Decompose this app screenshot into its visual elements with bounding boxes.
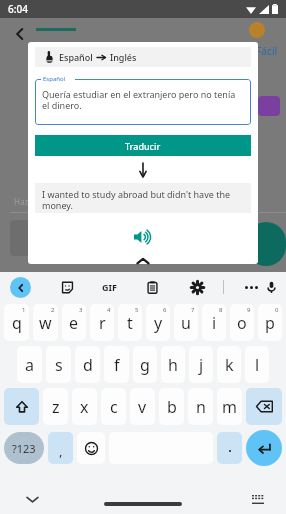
staticText: Español: [59, 51, 93, 63]
button[interactable]: s: [46, 346, 71, 383]
button[interactable]: h: [161, 346, 185, 383]
button[interactable]: GIF: [102, 277, 117, 297]
staticText: w: [39, 312, 52, 334]
button[interactable]: n: [188, 388, 213, 425]
button[interactable]: a: [17, 346, 42, 383]
button[interactable]: Traducir: [35, 135, 251, 156]
staticText: a: [25, 354, 34, 376]
staticText: i: [212, 312, 217, 334]
button[interactable]: c: [101, 388, 126, 425]
staticText: d: [83, 354, 93, 376]
button[interactable]: d: [75, 346, 100, 383]
button[interactable]: j: [189, 346, 213, 383]
button[interactable]: Switch keyboard: [248, 489, 268, 509]
staticText: 7: [191, 306, 195, 314]
button[interactable]: q: [4, 304, 29, 341]
staticText: v: [138, 396, 147, 418]
staticText: 6:04: [8, 2, 28, 16]
staticText: Fácil: [256, 44, 278, 58]
button[interactable]: Clipboard: [142, 277, 162, 297]
staticText: h: [168, 354, 178, 376]
staticText: q: [12, 312, 22, 334]
button[interactable]: Back: [10, 277, 31, 298]
button[interactable]: ?123: [4, 432, 44, 464]
staticText: f: [114, 354, 120, 376]
button[interactable]: Voice input: [261, 277, 281, 297]
button[interactable]: e: [62, 304, 86, 341]
button[interactable]: r: [90, 304, 114, 341]
staticText: n: [196, 396, 206, 418]
button[interactable]: Back: [8, 22, 32, 46]
staticText: 1: [22, 306, 26, 314]
button[interactable]: I wanted to study abroad but didn't have…: [35, 183, 251, 213]
button[interactable]: Shift: [4, 388, 39, 425]
staticText: ?123: [12, 441, 36, 456]
staticText: 3: [79, 306, 83, 314]
button[interactable]: x: [72, 388, 97, 425]
button[interactable]: Stickers: [57, 277, 77, 297]
button[interactable]: g: [133, 346, 157, 383]
button[interactable]: k: [217, 346, 241, 383]
button[interactable]: Enter: [246, 430, 282, 466]
staticText: j: [199, 354, 204, 376]
button[interactable]: t: [118, 304, 142, 341]
button[interactable]: Play audio: [128, 222, 158, 252]
staticText: l: [255, 354, 260, 376]
staticText: k: [225, 354, 234, 376]
button[interactable]: b: [159, 388, 184, 425]
staticText: 8: [219, 306, 223, 314]
staticText: 6: [163, 306, 167, 314]
staticText: x: [80, 396, 89, 418]
staticText: m: [222, 396, 237, 418]
button[interactable]: Quería estudiar en el extranjero pero no…: [35, 79, 251, 125]
button[interactable]: z: [43, 388, 68, 425]
staticText: t: [127, 312, 133, 334]
staticText: GIF: [102, 281, 117, 293]
button[interactable]: l: [245, 346, 269, 383]
staticText: b: [167, 396, 177, 418]
staticText: 9: [247, 306, 251, 314]
staticText: y: [154, 312, 163, 334]
staticText: 5: [135, 306, 139, 314]
staticText: I wanted to study abroad but didn't have…: [42, 188, 245, 212]
staticText: p: [265, 312, 275, 334]
button[interactable]: o: [230, 304, 254, 341]
button[interactable]: Emoji: [77, 432, 105, 464]
staticText: 0: [275, 306, 279, 314]
button[interactable]: Period: [217, 432, 242, 464]
staticText: Español: [43, 75, 66, 83]
button[interactable]: m: [217, 388, 242, 425]
button[interactable]: Hide keyboard: [22, 489, 42, 509]
staticText: Haz: [14, 196, 29, 207]
staticText: z: [52, 396, 60, 418]
button[interactable]: u: [174, 304, 198, 341]
button[interactable]: Comma: [48, 432, 73, 464]
staticText: ,: [59, 442, 63, 460]
button[interactable]: More: [241, 277, 261, 297]
staticText: s: [55, 354, 63, 376]
staticText: Quería estudiar en el extranjero pero no…: [42, 88, 245, 112]
staticText: Inglés: [110, 51, 137, 63]
button[interactable]: Settings: [187, 277, 207, 297]
button[interactable]: y: [146, 304, 170, 341]
button[interactable]: Backspace: [246, 388, 282, 425]
button[interactable]: i: [202, 304, 226, 341]
staticText: g: [140, 354, 150, 376]
button[interactable]: v: [130, 388, 155, 425]
button[interactable]: f: [104, 346, 129, 383]
staticText: o: [237, 312, 247, 334]
staticText: c: [110, 396, 118, 418]
staticText: 2: [51, 306, 55, 314]
button[interactable]: Español: [35, 47, 251, 67]
staticText: Traducir: [125, 140, 161, 152]
button[interactable]: w: [33, 304, 58, 341]
button[interactable]: p: [258, 304, 282, 341]
staticText: e: [69, 312, 79, 334]
staticText: 4: [107, 306, 111, 314]
staticText: u: [181, 312, 191, 334]
staticText: r: [99, 312, 106, 334]
